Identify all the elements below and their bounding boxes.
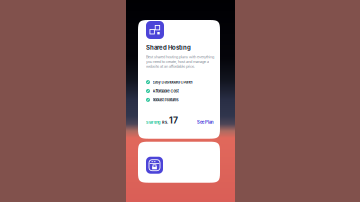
staticText: Robust Features	[152, 97, 178, 102]
staticText: 17	[169, 115, 178, 126]
button[interactable]: See Plan	[197, 120, 214, 126]
staticText: Affordable Cost	[152, 89, 178, 93]
staticText: Starting	[146, 120, 160, 125]
button[interactable]: Shared Hosting	[138, 20, 220, 139]
staticText: Best shared hosting plans with everythin…	[146, 54, 214, 69]
staticText: See Plan	[197, 120, 214, 125]
staticText: Shared Hosting	[146, 44, 191, 51]
staticText: Rs.	[162, 120, 168, 125]
staticText: Easy Dashboard CPanel	[152, 80, 192, 84]
button[interactable]	[138, 142, 220, 183]
